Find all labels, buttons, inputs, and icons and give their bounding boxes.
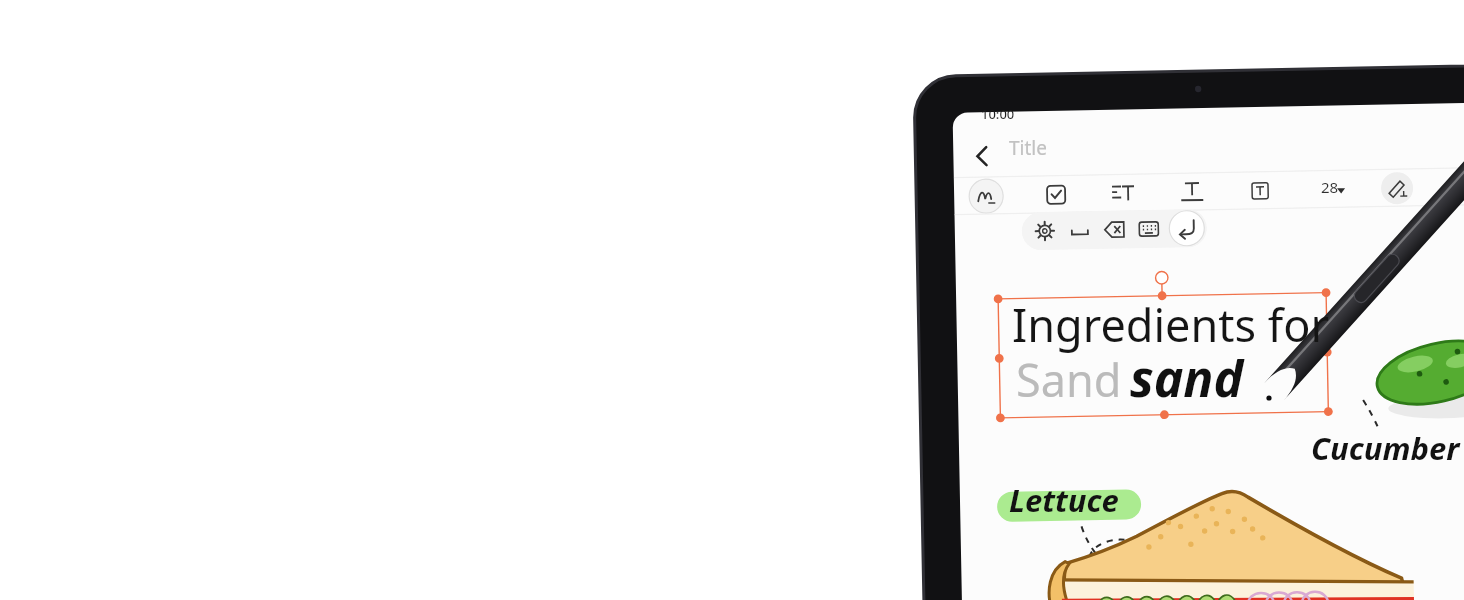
button[interactable]: Checklist [1047,171,1081,203]
button[interactable]: Back [972,131,1008,165]
staticText: sand [1130,344,1244,412]
staticText: Cucumber [1311,427,1460,469]
staticText: Sand [1016,349,1122,410]
staticText: 28 [1321,177,1339,197]
staticText: Title [1009,135,1047,161]
button[interactable]: Handwriting mode [976,169,1013,206]
button[interactable]: Settings [1037,208,1068,239]
button[interactable]: Font size 28 [1313,171,1361,203]
button[interactable]: Enter [1177,206,1212,241]
button[interactable]: Text box [1251,171,1285,203]
button[interactable]: Keyboard [1141,208,1172,239]
button[interactable]: Space [1072,208,1103,239]
staticText: Lettuce [1009,479,1119,521]
button[interactable]: Pen settings [1388,170,1423,205]
button[interactable]: Paragraph style [1114,171,1148,203]
button[interactable]: Text format [1183,171,1217,203]
button[interactable]: Title field [1004,131,1100,165]
staticText: 10:00 [981,105,1015,123]
staticText: Ingredients for [1012,294,1330,355]
button[interactable]: Backspace [1107,208,1138,239]
